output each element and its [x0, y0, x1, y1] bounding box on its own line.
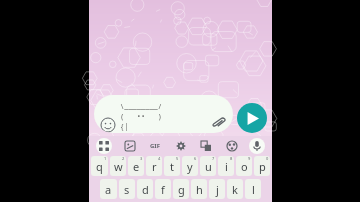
button[interactable]: t — [164, 156, 180, 176]
button[interactable]: y — [182, 156, 198, 176]
staticText: l — [252, 182, 255, 197]
button[interactable]: r — [146, 156, 162, 176]
button[interactable]: o — [236, 156, 252, 176]
button[interactable]: Apps — [96, 138, 112, 154]
button[interactable]: f — [155, 179, 171, 199]
button[interactable]: h — [191, 179, 207, 199]
button[interactable]: Settings — [173, 138, 189, 154]
staticText: \________/ — [120, 102, 162, 112]
staticText: ( •• ) — [120, 112, 162, 122]
staticText: r — [152, 159, 157, 174]
button[interactable]: GIF — [147, 138, 163, 154]
staticText: q — [96, 159, 103, 174]
button[interactable]: k — [227, 179, 243, 199]
staticText: 2 — [122, 156, 125, 161]
button[interactable]: j — [209, 179, 225, 199]
staticText: k — [232, 182, 238, 197]
staticText: 8 — [230, 156, 233, 161]
staticText: p — [259, 159, 266, 174]
button[interactable]: g — [173, 179, 189, 199]
staticText: 7 — [212, 156, 215, 161]
staticText: s — [124, 182, 130, 197]
button[interactable]: i — [218, 156, 234, 176]
staticText: 3 — [140, 156, 143, 161]
staticText: GIF — [150, 142, 160, 150]
staticText: {| — [120, 122, 129, 132]
button[interactable]: Voice input — [249, 138, 265, 154]
button[interactable]: a — [100, 179, 117, 199]
staticText: 4 — [158, 156, 161, 161]
button[interactable]: l — [245, 179, 261, 199]
button[interactable]: d — [137, 179, 153, 199]
button[interactable]: Attach — [211, 117, 227, 129]
button[interactable]: w — [110, 156, 126, 176]
button[interactable]: u — [200, 156, 216, 176]
button[interactable]: Send — [237, 103, 267, 133]
staticText: d — [142, 182, 149, 197]
staticText: 1 — [104, 156, 107, 161]
button[interactable]: p — [254, 156, 270, 176]
staticText: o — [241, 159, 248, 174]
button[interactable]: Translate — [198, 138, 214, 154]
button[interactable]: Emoji — [94, 95, 233, 133]
staticText: i — [225, 159, 228, 174]
staticText: 0 — [266, 156, 269, 161]
staticText: 5 — [176, 156, 179, 161]
staticText: 9 — [248, 156, 251, 161]
button[interactable]: Stickers — [122, 138, 138, 154]
staticText: h — [196, 182, 203, 197]
staticText: t — [170, 159, 174, 174]
staticText: w — [114, 159, 123, 174]
staticText: 6 — [194, 156, 197, 161]
staticText: a — [105, 182, 112, 197]
button[interactable]: Emoji — [100, 117, 116, 133]
button[interactable]: q — [91, 156, 108, 176]
staticText: y — [187, 159, 193, 174]
button[interactable]: Themes — [224, 138, 240, 154]
staticText: f — [161, 182, 165, 197]
button[interactable]: e — [128, 156, 144, 176]
staticText: g — [178, 182, 185, 197]
button[interactable]: s — [119, 179, 135, 199]
staticText: e — [133, 159, 140, 174]
staticText: j — [216, 182, 219, 197]
staticText: u — [205, 159, 212, 174]
